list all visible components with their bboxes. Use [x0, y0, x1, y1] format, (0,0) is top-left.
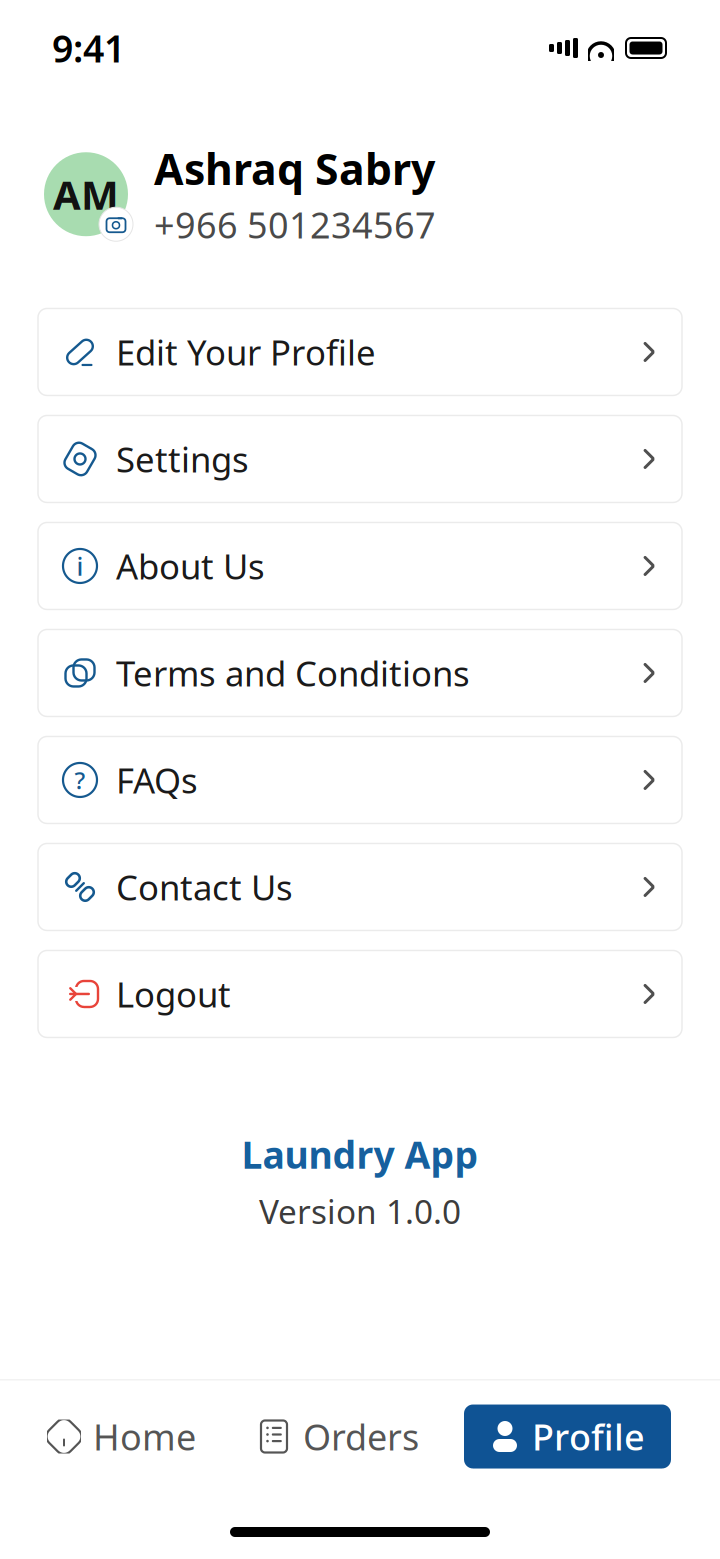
button[interactable]: Contact Us	[38, 843, 682, 930]
button[interactable]: Logout	[38, 950, 682, 1037]
staticText: FAQs	[116, 757, 198, 803]
staticText: Profile	[532, 1413, 645, 1460]
button[interactable]: Terms and Conditions	[38, 629, 682, 716]
staticText: Terms and Conditions	[116, 650, 470, 696]
staticText: Edit Your Profile	[116, 329, 376, 375]
staticText: Version 1.0.0	[259, 1189, 461, 1233]
staticText: Home	[93, 1413, 196, 1460]
button[interactable]: Edit Your Profile	[38, 308, 682, 395]
staticText: Ashraq Sabry	[154, 140, 435, 197]
button[interactable]: Orders	[241, 1404, 433, 1468]
staticText: AM	[53, 168, 119, 221]
staticText: Laundry App	[241, 1129, 478, 1179]
staticText: Orders	[303, 1413, 419, 1460]
button[interactable]: Settings	[38, 415, 682, 502]
staticText: 9:41	[52, 23, 125, 73]
staticText: Logout	[116, 971, 231, 1017]
button[interactable]: Profile	[464, 1404, 671, 1468]
button[interactable]: i	[38, 522, 682, 609]
button[interactable]: ?	[38, 736, 682, 823]
button[interactable]: Home	[31, 1404, 210, 1468]
staticText: ?	[74, 764, 85, 796]
staticText: i	[76, 549, 83, 583]
staticText: Settings	[116, 436, 249, 482]
button[interactable]: Change profile photo	[38, 146, 134, 242]
staticText: About Us	[116, 543, 265, 589]
staticText: Contact Us	[116, 864, 293, 910]
staticText: +966 501234567	[154, 201, 436, 248]
